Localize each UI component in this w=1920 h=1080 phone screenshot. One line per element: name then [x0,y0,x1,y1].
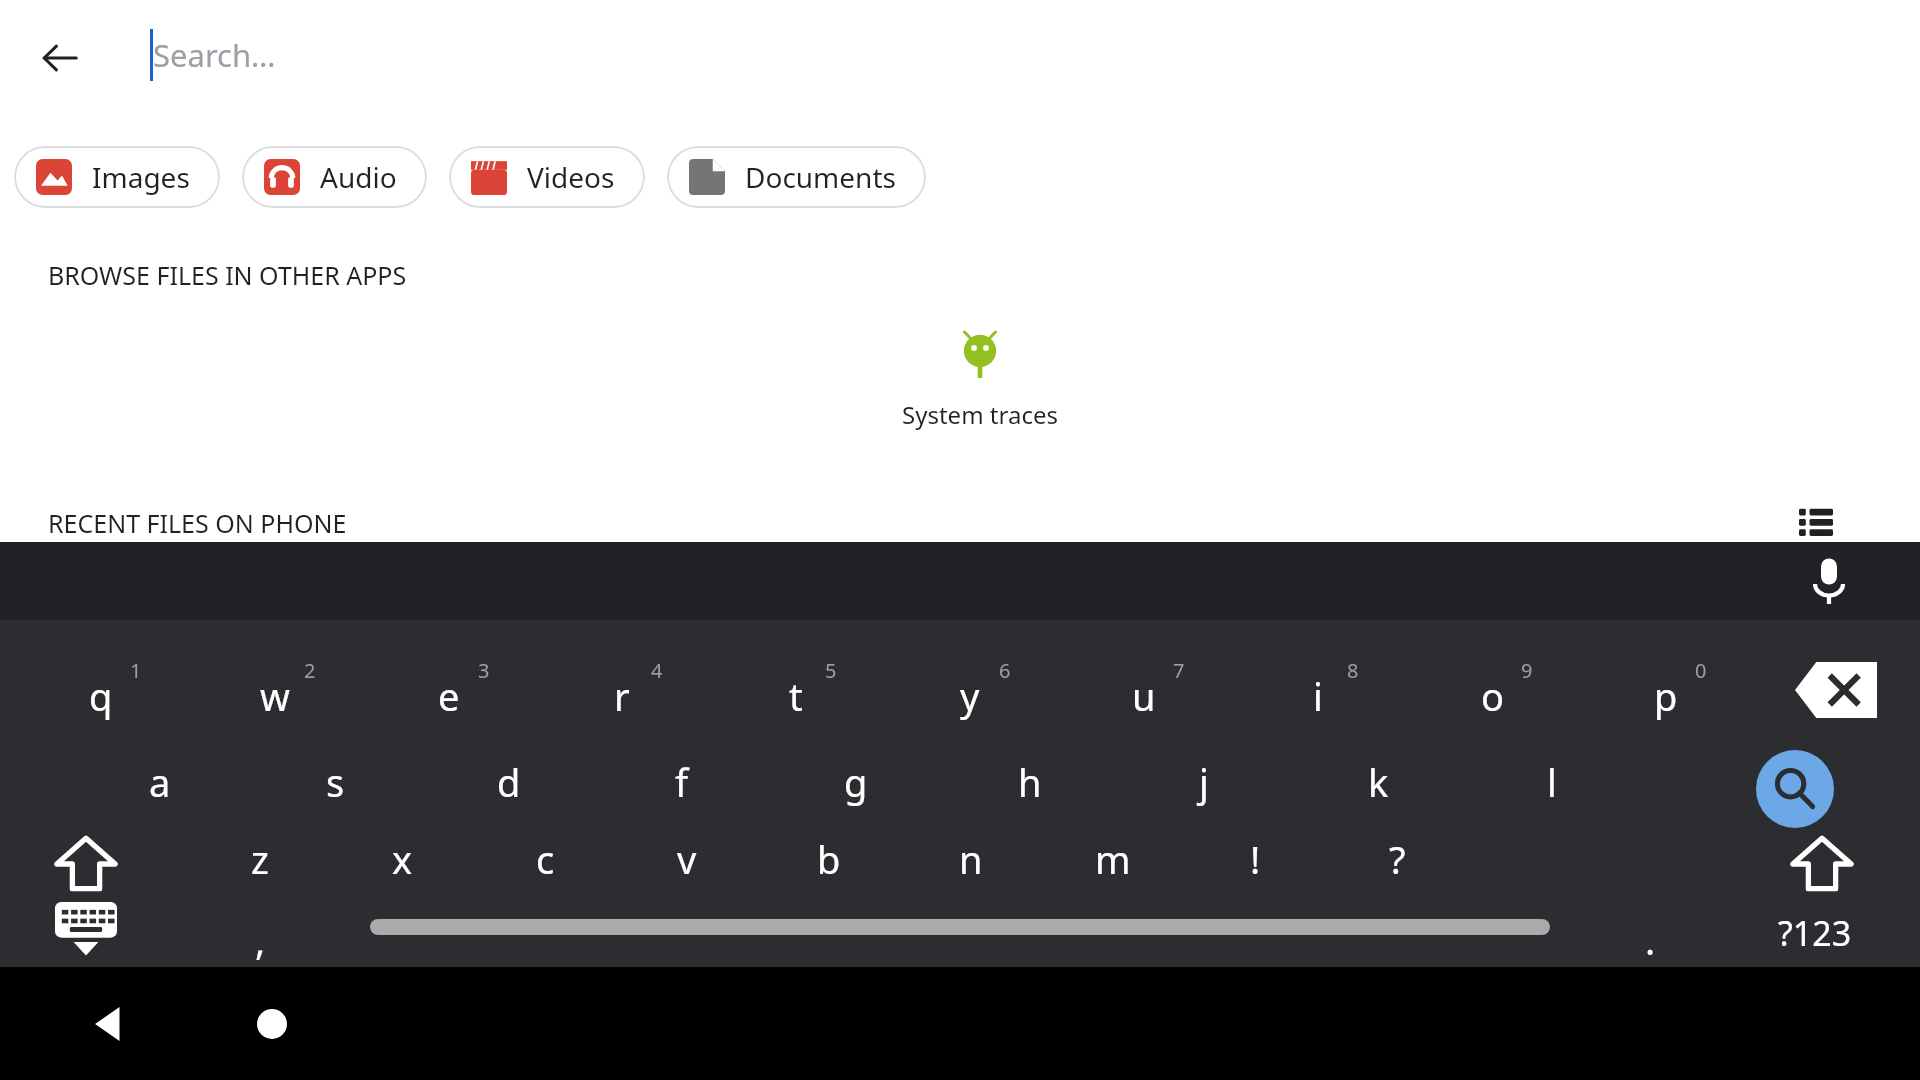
staticText: d [497,756,521,808]
staticText: System traces [902,398,1058,431]
staticText: 1 [130,657,142,684]
staticText: f [675,756,689,808]
button[interactable]: q [46,653,156,739]
button[interactable]: Shift [40,828,132,900]
staticText: h [1018,756,1042,808]
staticText: l [1547,756,1557,808]
button[interactable]: Shift [1776,828,1868,900]
staticText: Videos [527,158,615,196]
staticText: z [251,833,269,885]
staticText: r [614,670,630,722]
button[interactable]: Home [237,989,307,1059]
staticText: ?123 [1778,910,1852,956]
button[interactable]: Search [1756,750,1834,828]
staticText: ! [1250,833,1261,885]
button[interactable]: p [1611,653,1721,739]
button[interactable]: s [285,743,385,821]
staticText: 6 [999,657,1011,684]
button[interactable]: n [921,820,1021,898]
button[interactable]: Back [75,989,145,1059]
button[interactable]: , [210,901,310,979]
staticText: v [677,833,697,885]
button[interactable]: k [1328,743,1428,821]
button[interactable]: b [779,820,879,898]
button[interactable]: Voice input [1792,544,1866,618]
staticText: k [1368,756,1389,808]
button[interactable]: . [1600,901,1700,979]
staticText: 7 [1173,657,1185,684]
button[interactable]: Space [370,913,1550,973]
button[interactable]: Documents [667,146,926,208]
staticText: RECENT FILES ON PHONE [48,506,347,540]
staticText: n [959,833,983,885]
staticText: 4 [651,657,663,684]
staticText: b [817,833,841,885]
button[interactable]: h [980,743,1080,821]
button[interactable]: l [1502,743,1602,821]
staticText: g [844,756,868,808]
staticText: 8 [1347,657,1359,684]
staticText: u [1132,670,1156,722]
staticText: q [89,670,113,722]
button[interactable]: j [1154,743,1254,821]
button[interactable]: List view [1790,495,1842,547]
button[interactable]: g [806,743,906,821]
button[interactable]: ?123 [1750,900,1880,966]
button[interactable]: Videos [449,146,645,208]
staticText: s [326,756,345,808]
staticText: p [1654,670,1678,722]
button[interactable]: i [1263,653,1373,739]
staticText: 9 [1521,657,1533,684]
button[interactable]: t [741,653,851,739]
staticText: y [960,670,980,722]
staticText: 3 [478,657,490,684]
button[interactable]: Audio [242,146,427,208]
button[interactable]: d [459,743,559,821]
button[interactable]: Hide keyboard [40,902,132,964]
button[interactable]: ! [1205,820,1305,898]
staticText: Search… [153,34,276,76]
staticText: a [149,756,171,808]
staticText: i [1313,670,1323,722]
staticText: 5 [825,657,837,684]
staticText: BROWSE FILES IN OTHER APPS [48,258,407,292]
staticText: c [536,833,555,885]
button[interactable]: Backspace [1790,658,1882,722]
staticText: Documents [745,158,896,196]
button[interactable]: System traces [880,330,1080,431]
staticText: w [260,670,290,722]
staticText: t [789,670,803,722]
staticText: o [1481,670,1504,722]
button[interactable]: o [1437,653,1547,739]
staticText: m [1095,833,1131,885]
button[interactable]: e [394,653,504,739]
button[interactable]: w [220,653,330,739]
button[interactable]: u [1089,653,1199,739]
staticText: 2 [304,657,316,684]
staticText: ? [1389,833,1406,885]
staticText: e [438,670,460,722]
staticText: 0 [1695,657,1707,684]
staticText: Audio [320,158,397,196]
button[interactable]: c [495,820,595,898]
button[interactable]: Images [14,146,220,208]
button[interactable]: m [1063,820,1163,898]
button[interactable]: ? [1347,820,1447,898]
staticText: j [1199,756,1209,808]
staticText: x [392,833,413,885]
button[interactable]: Back [32,30,88,86]
staticText: . [1645,914,1656,966]
button[interactable]: x [352,820,452,898]
button[interactable]: v [637,820,737,898]
staticText: , [255,914,266,966]
button[interactable]: r [567,653,677,739]
button[interactable]: z [210,820,310,898]
button[interactable]: f [632,743,732,821]
button[interactable]: a [110,743,210,821]
staticText: Images [92,158,190,196]
button[interactable]: Search… [150,12,1350,98]
button[interactable]: y [915,653,1025,739]
